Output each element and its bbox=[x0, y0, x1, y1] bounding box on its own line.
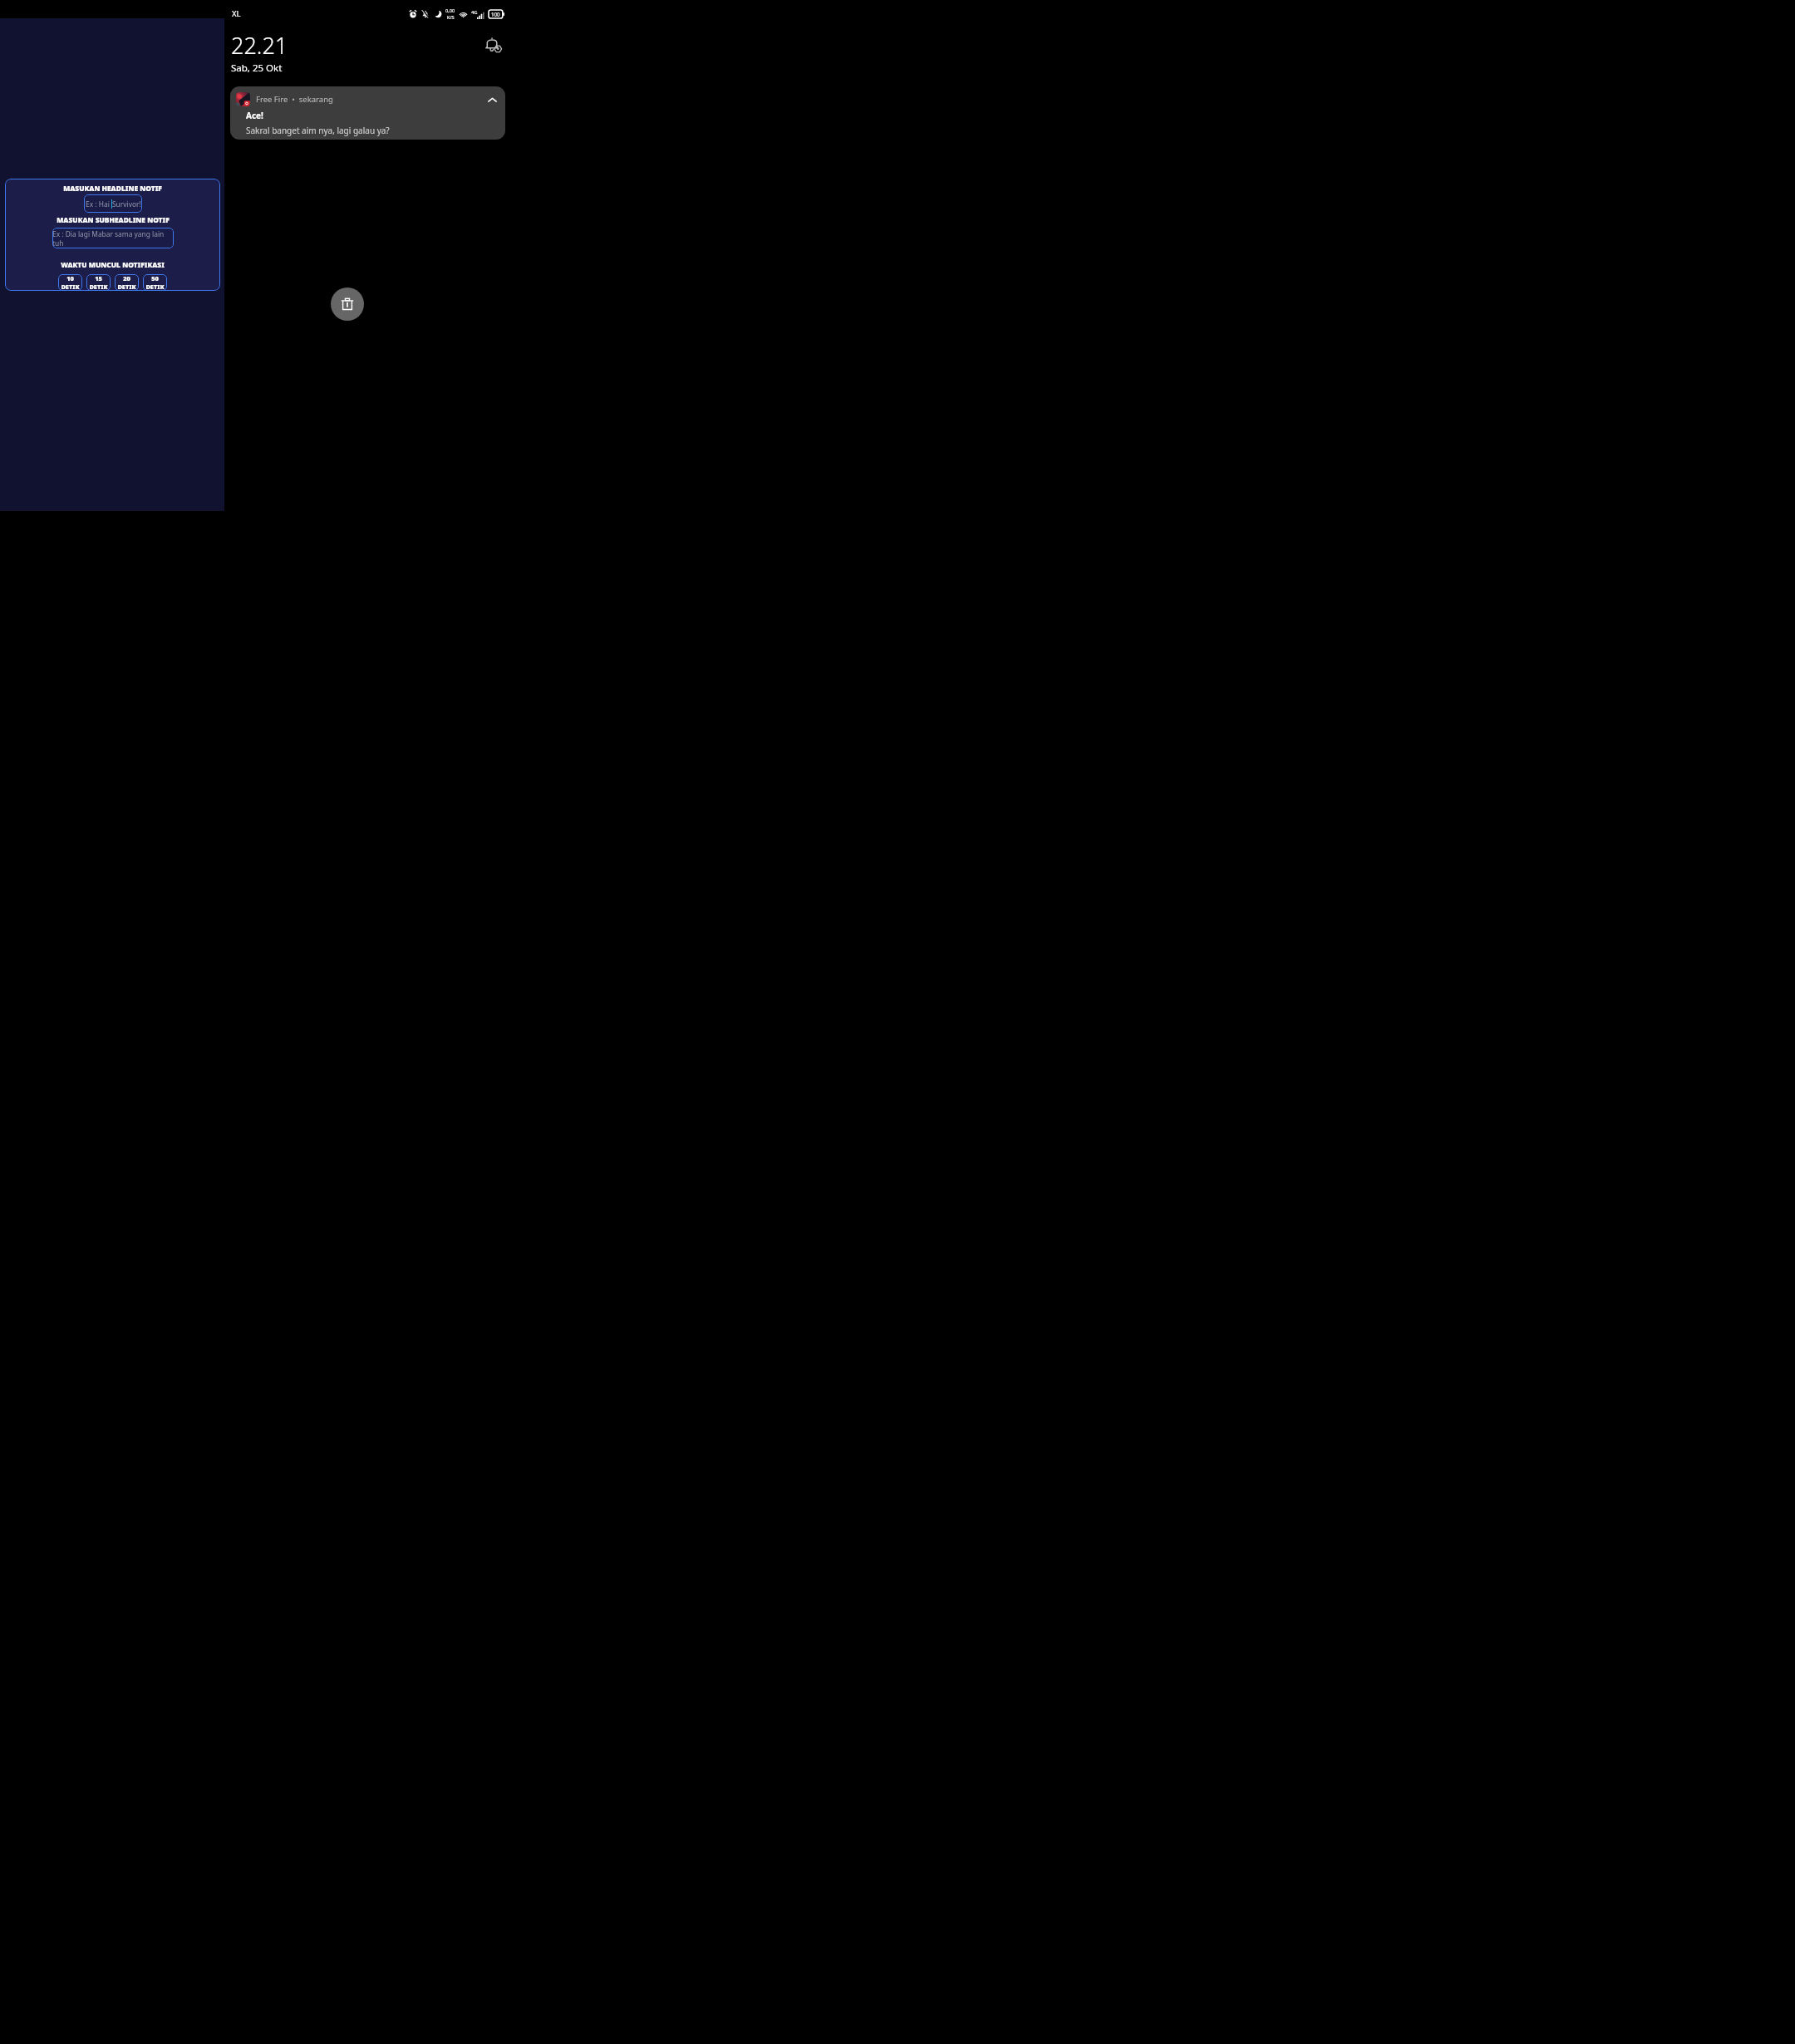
button[interactable]: Notification settings bbox=[482, 34, 504, 56]
staticText: MASUKAN SUBHEADLINE NOTIF bbox=[57, 215, 170, 224]
staticText: Ex : Hai bbox=[86, 199, 111, 209]
staticText: MASUKAN HEADLINE NOTIF bbox=[63, 184, 162, 193]
staticText: Sakral banget aim nya, lagi galau ya? bbox=[246, 125, 390, 136]
staticText: Survivor! bbox=[112, 199, 141, 209]
staticText: 0,00 bbox=[445, 7, 455, 14]
button[interactable]: Clear all notifications bbox=[331, 287, 364, 321]
button[interactable]: Ex : Hai bbox=[84, 194, 142, 213]
button[interactable]: 15 DETIK bbox=[86, 274, 111, 291]
staticText: 4G bbox=[471, 9, 478, 16]
staticText: 10 DETIK bbox=[58, 274, 82, 291]
staticText: Sab, 25 Okt bbox=[231, 61, 283, 75]
staticText: 100 bbox=[491, 11, 500, 17]
staticText: XL bbox=[232, 8, 241, 19]
staticText: 20 DETIK bbox=[115, 274, 139, 291]
staticText: 22.21 bbox=[231, 30, 288, 61]
button[interactable]: Collapse notification bbox=[485, 93, 499, 106]
button[interactable]: 50 DETIK bbox=[143, 274, 167, 291]
staticText: Free Fire • sekarang bbox=[256, 94, 333, 105]
staticText: K/S bbox=[447, 14, 455, 21]
staticText: 15 DETIK bbox=[86, 274, 111, 291]
staticText: Ace! bbox=[246, 110, 263, 121]
button[interactable]: 20 DETIK bbox=[115, 274, 139, 291]
button[interactable]: Free Fire • sekarang bbox=[230, 86, 505, 140]
button[interactable]: 10 DETIK bbox=[58, 274, 82, 291]
staticText: Ex : Dia lagi Mabar sama yang lain tuh bbox=[52, 229, 174, 248]
button[interactable]: Ex : Dia lagi Mabar sama yang lain tuh bbox=[52, 228, 174, 248]
staticText: WAKTU MUNCUL NOTIFIKASI bbox=[61, 260, 165, 269]
staticText: 50 DETIK bbox=[143, 274, 167, 291]
